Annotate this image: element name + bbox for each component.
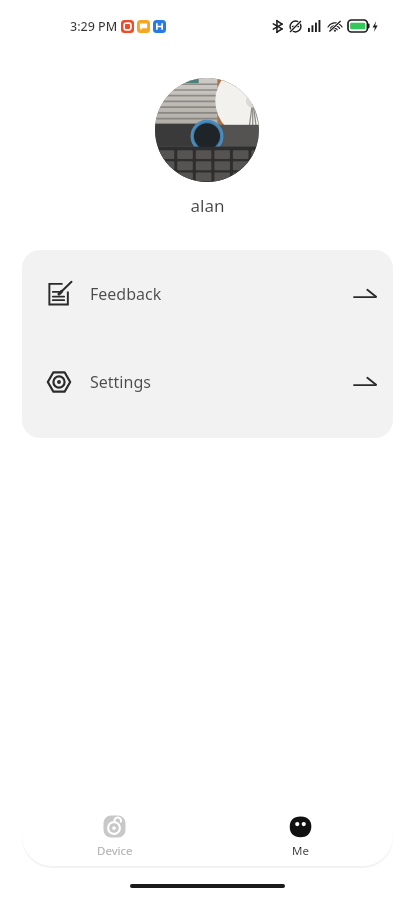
staticText: alan [0,194,415,217]
staticText: Device [97,843,133,859]
button[interactable]: Feedback [22,263,393,325]
staticText: Feedback [90,283,162,305]
button[interactable]: Device [22,814,207,859]
staticText: Settings [90,371,151,393]
staticText: Me [292,843,309,859]
staticText: 3:29 PM [70,18,118,35]
button[interactable]: Settings [22,351,393,413]
button[interactable]: Profile photo [155,78,259,182]
button[interactable]: Me [207,814,393,859]
